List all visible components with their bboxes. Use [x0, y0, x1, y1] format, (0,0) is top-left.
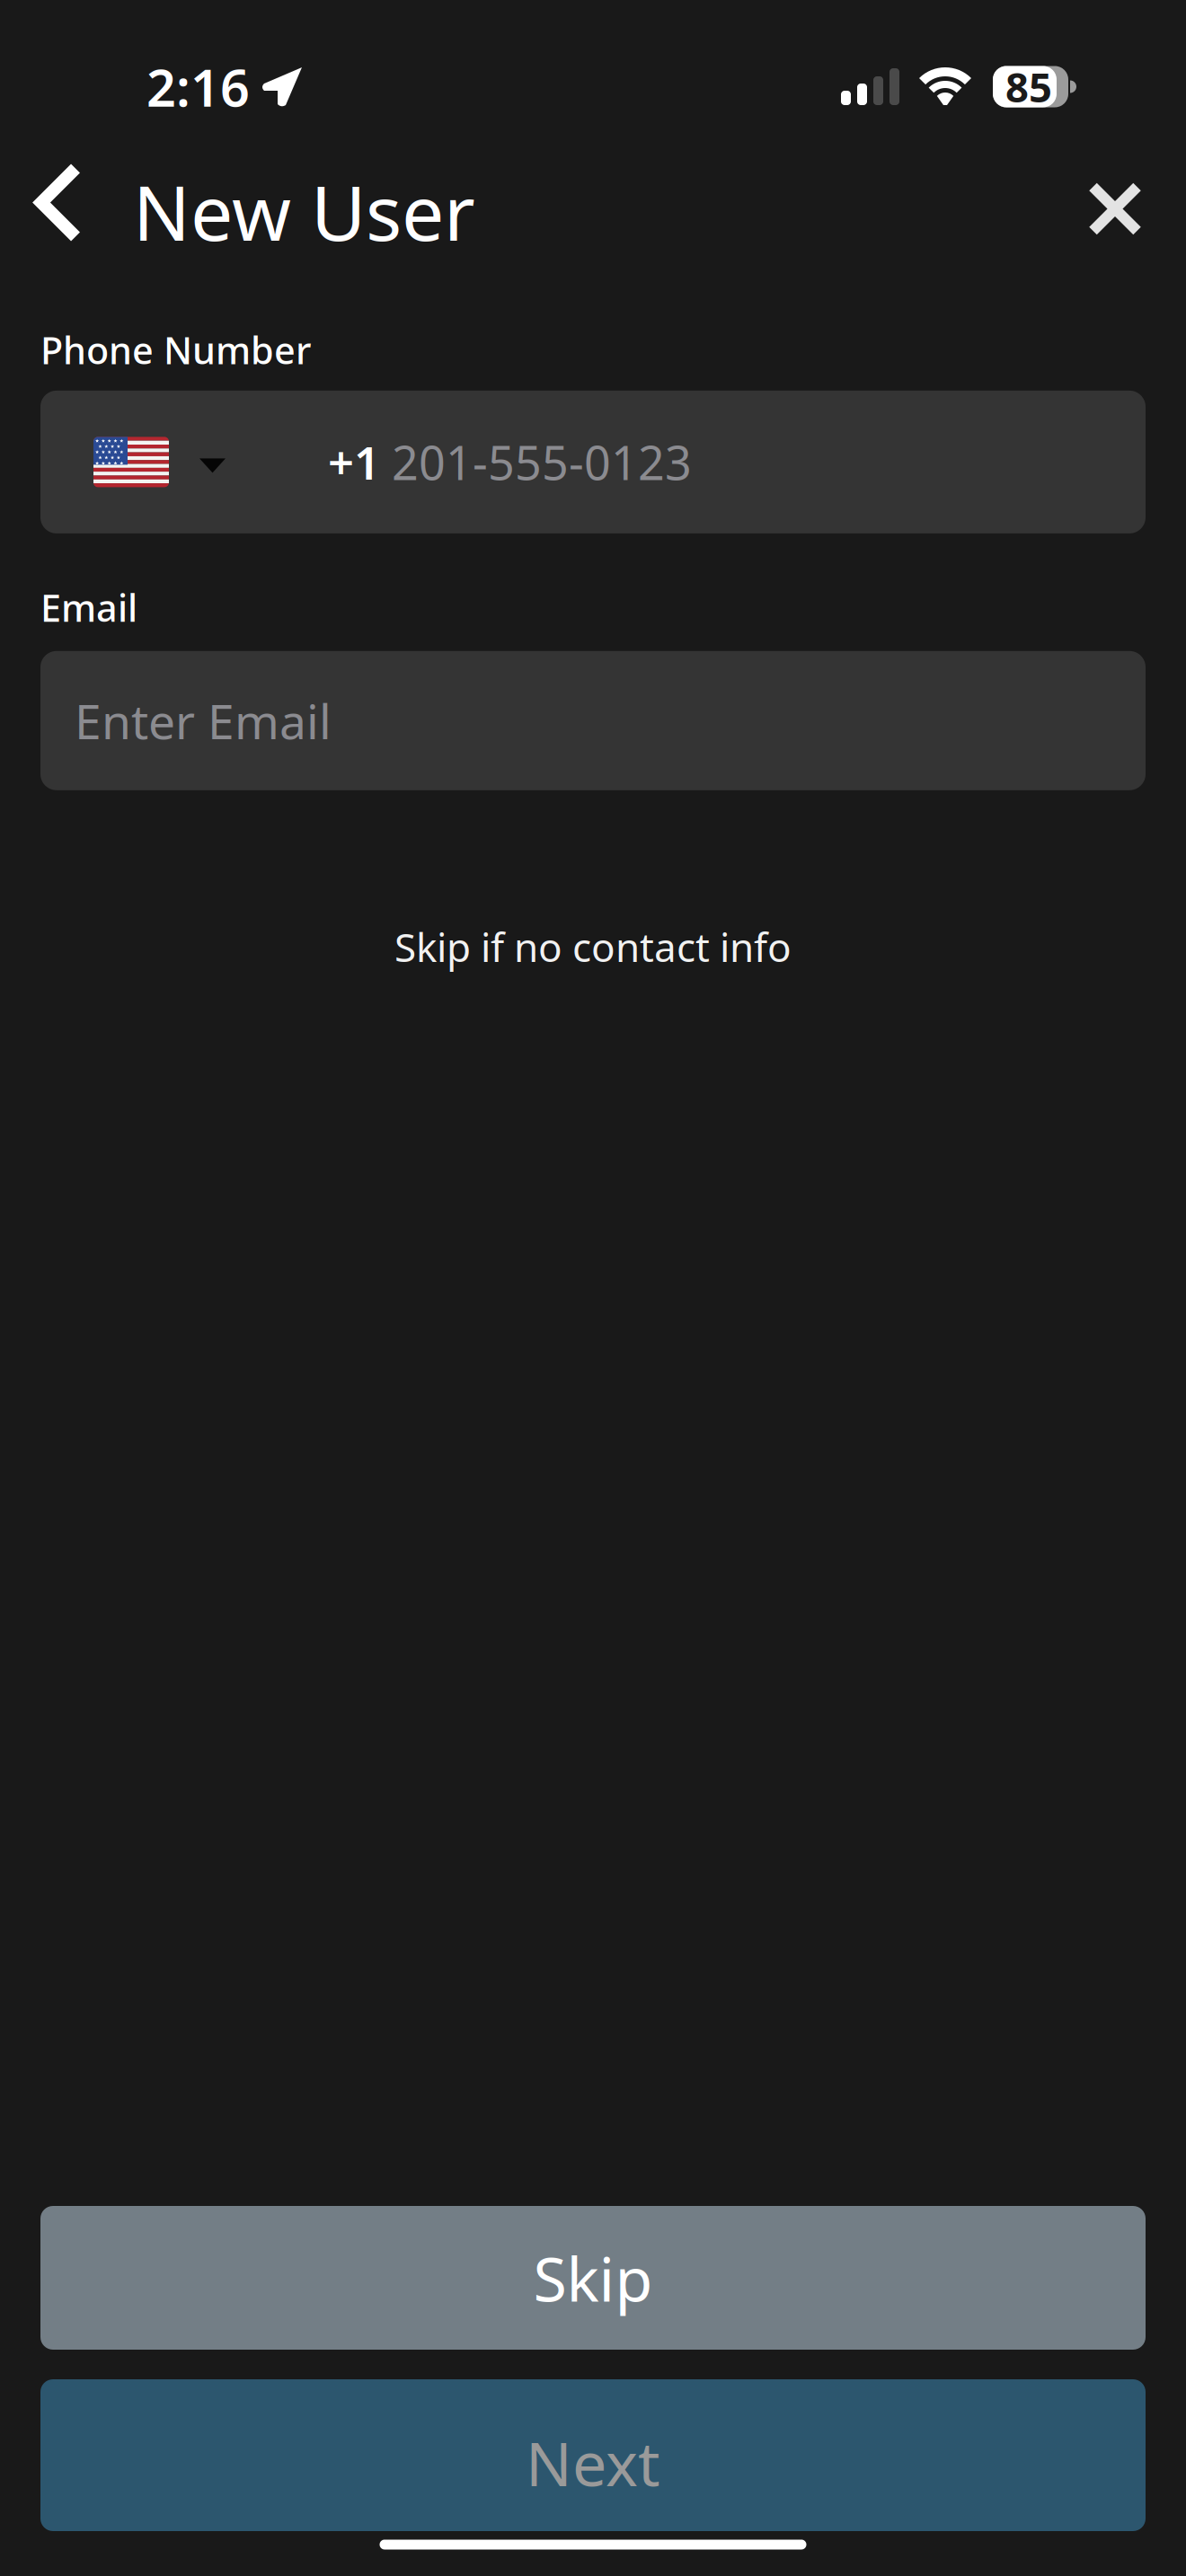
staticText: Email: [40, 583, 137, 632]
button[interactable]: Select country code: [40, 391, 261, 533]
staticText: 85: [1005, 60, 1052, 114]
staticText: Next: [526, 2422, 660, 2503]
staticText: Skip if no contact info: [394, 920, 792, 973]
staticText: New User: [133, 161, 475, 262]
staticText: Phone Number: [40, 325, 311, 374]
button[interactable]: Next: [40, 2379, 1146, 2531]
staticText: 201-555-0123: [392, 431, 692, 493]
button[interactable]: Close: [1062, 157, 1168, 266]
staticText: Skip: [533, 2237, 653, 2318]
staticText: +1: [328, 432, 380, 492]
button[interactable]: Back: [15, 159, 102, 265]
staticText: Enter Email: [75, 689, 332, 752]
button[interactable]: Skip: [40, 2206, 1146, 2350]
staticText: 2:16: [146, 52, 250, 121]
